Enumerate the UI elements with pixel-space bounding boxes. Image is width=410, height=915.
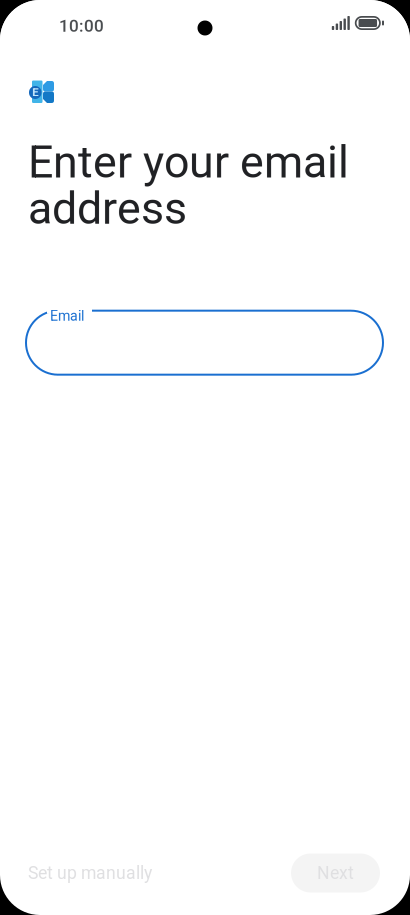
staticText: Email [50, 308, 84, 324]
button[interactable]: Set up manually [18, 852, 162, 894]
staticText: Set up manually [28, 863, 152, 883]
staticText: E [32, 86, 38, 99]
button[interactable]: Next [291, 853, 380, 892]
staticText: Enter your email [28, 136, 349, 188]
staticText: Next [317, 863, 354, 883]
staticText: 10:00 [59, 16, 104, 36]
staticText: address [28, 182, 187, 235]
